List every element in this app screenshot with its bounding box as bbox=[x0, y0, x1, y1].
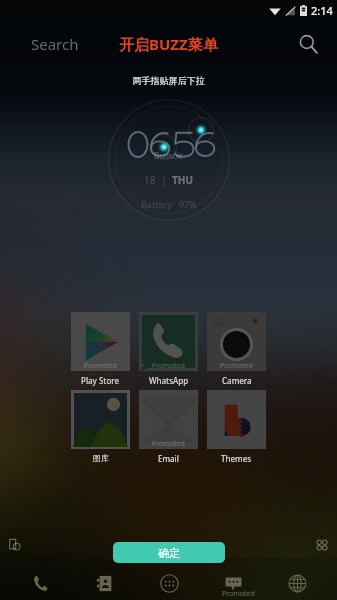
button[interactable]: Promoted bbox=[139, 390, 198, 464]
staticText: 2:14 bbox=[311, 3, 333, 18]
button[interactable]: Widgets bbox=[311, 534, 333, 556]
staticText: Promoted bbox=[222, 589, 255, 599]
staticText: WhatsApp bbox=[149, 375, 189, 386]
staticText: 确定 bbox=[158, 546, 180, 560]
staticText: Battery 97% bbox=[141, 198, 197, 210]
staticText: 18 bbox=[144, 173, 156, 187]
staticText: Bonsoir bbox=[154, 150, 184, 161]
button[interactable]: Messages bbox=[209, 567, 257, 599]
staticText: Camera bbox=[222, 375, 252, 386]
button[interactable]: Promoted bbox=[71, 312, 130, 386]
staticText: Promoted bbox=[84, 361, 117, 371]
button[interactable]: Promoted bbox=[207, 312, 266, 386]
staticText: 图库 bbox=[93, 453, 109, 463]
staticText: Play Store bbox=[81, 375, 120, 386]
staticText: Promoted bbox=[152, 439, 185, 449]
staticText: | bbox=[156, 173, 172, 187]
staticText: THU bbox=[172, 173, 193, 187]
button[interactable]: Browser bbox=[273, 567, 321, 599]
button[interactable]: Notes bbox=[4, 534, 26, 556]
staticText: Promoted bbox=[220, 361, 253, 371]
button[interactable]: Promoted bbox=[139, 312, 198, 386]
button[interactable]: Search bbox=[31, 34, 79, 54]
button[interactable]: 图库 bbox=[71, 390, 130, 463]
button[interactable]: Phone bbox=[16, 567, 64, 599]
button[interactable]: Themes bbox=[207, 390, 266, 464]
staticText: Promoted bbox=[152, 361, 185, 371]
button[interactable]: Search bbox=[293, 29, 323, 59]
staticText: 开启BUZZ菜单 bbox=[119, 34, 218, 54]
button[interactable]: All apps bbox=[145, 567, 193, 599]
staticText: Email bbox=[158, 453, 179, 464]
button[interactable]: 确定 bbox=[113, 542, 225, 563]
staticText: 两手指贴屏后下拉 bbox=[0, 75, 337, 86]
button[interactable]: Contacts bbox=[80, 567, 128, 599]
staticText: Themes bbox=[221, 453, 252, 464]
